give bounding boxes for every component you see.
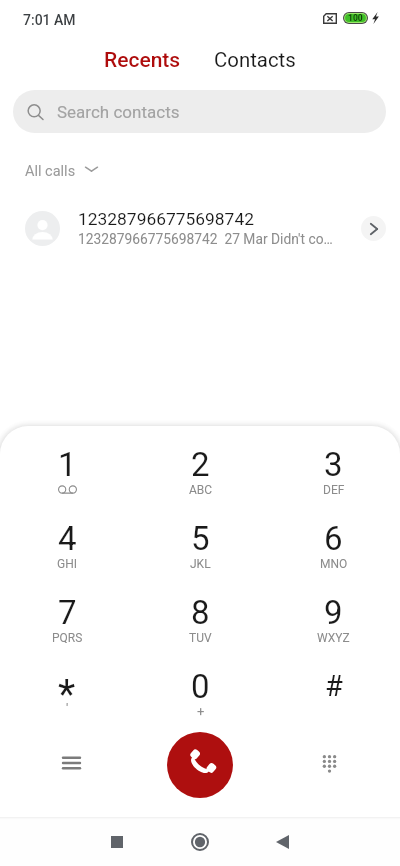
staticText: 7 [58,593,77,631]
button[interactable]: More options [52,744,90,782]
button[interactable]: # [267,664,400,738]
staticText: ' [66,701,69,713]
button[interactable]: 2 [134,442,267,516]
staticText: WXYZ [317,631,350,643]
staticText: 7:01 AM [23,12,76,28]
staticText: 2 [191,445,210,483]
staticText: 123287966775698742 [78,209,254,229]
button[interactable]: Call details [361,216,386,241]
staticText: GHI [57,557,77,569]
button[interactable]: Contacts [198,42,312,78]
staticText: Search contacts [57,102,180,122]
staticText: 6 [324,519,343,557]
staticText: # [325,669,343,703]
staticText: ABC [189,483,213,495]
staticText: TUV [189,631,212,643]
button[interactable]: 6 [267,516,400,590]
button[interactable]: Call [167,732,233,798]
staticText: + [197,704,205,716]
staticText: 123287966775698742 27 Mar Didn't co… [78,231,333,247]
staticText: DEF [323,483,345,495]
button[interactable]: Back [260,820,304,864]
button[interactable]: Search contacts [13,90,386,133]
button[interactable]: 0 [134,664,267,738]
staticText: 4 [58,519,77,557]
staticText: JKL [190,557,211,569]
button[interactable]: Recents [88,42,197,79]
button[interactable]: 9 [267,590,400,664]
button[interactable]: 7 [0,590,134,664]
button[interactable]: 5 [134,516,267,590]
button[interactable]: 123287966775698742 [0,198,400,258]
staticText: 5 [191,519,210,557]
staticText: * [58,671,76,709]
button[interactable]: 1 [0,442,134,516]
staticText: PQRS [52,631,83,643]
button[interactable]: Home [178,820,222,864]
button[interactable]: Dialpad [310,745,348,783]
button[interactable]: All calls [19,160,105,183]
staticText: 8 [191,593,210,631]
button[interactable]: Recent apps [95,820,139,864]
staticText: 1 [58,445,77,483]
staticText: 0 [191,667,210,705]
button[interactable]: 8 [134,590,267,664]
staticText: All calls [25,163,76,180]
button[interactable]: 4 [0,516,134,590]
staticText: 3 [324,445,343,483]
button[interactable]: 3 [267,442,400,516]
staticText: Contacts [214,48,296,72]
button[interactable]: * [0,664,134,738]
staticText: Recents [104,48,181,73]
staticText: 100 [348,13,363,23]
staticText: 9 [324,593,343,631]
staticText: MNO [320,557,348,569]
